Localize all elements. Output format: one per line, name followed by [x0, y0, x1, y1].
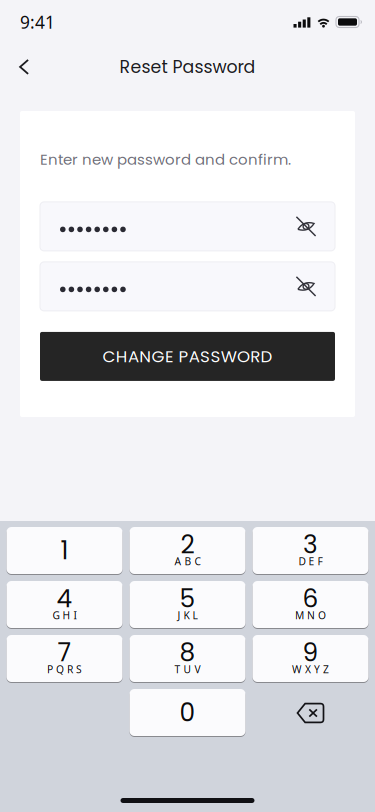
button[interactable]: Show confirm password — [289, 264, 323, 308]
button[interactable]: 6 — [252, 581, 368, 629]
button[interactable]: 1 — [6, 527, 122, 575]
button[interactable]: 8 — [129, 635, 245, 683]
staticText: CHANGE PASSWORD — [102, 345, 273, 368]
button[interactable]: 5 — [129, 581, 245, 629]
button[interactable]: CHANGE PASSWORD — [40, 332, 335, 381]
staticText: G H I — [52, 608, 76, 622]
button[interactable]: 9 — [252, 635, 368, 683]
button[interactable]: Back — [2, 45, 46, 89]
button[interactable]: 2 — [129, 527, 245, 575]
staticText: 5 — [179, 581, 195, 616]
staticText: 4 — [56, 581, 72, 616]
staticText: 9 — [302, 635, 318, 670]
staticText: 8 — [179, 635, 195, 670]
staticText: Reset Password — [119, 55, 255, 79]
staticText: 0 — [179, 695, 195, 730]
button[interactable]: Show password — [289, 204, 323, 248]
staticText: J K L — [177, 608, 197, 622]
staticText: 2 — [180, 527, 194, 562]
staticText: 1 — [60, 533, 68, 568]
staticText: 7 — [57, 635, 71, 670]
staticText: 6 — [302, 581, 318, 616]
button[interactable]: 7 — [6, 635, 122, 683]
staticText: M N O — [295, 608, 326, 622]
button[interactable]: 4 — [6, 581, 122, 629]
staticText: W X Y Z — [292, 662, 329, 676]
staticText: A B C — [174, 554, 200, 568]
button[interactable]: 0 — [129, 689, 245, 737]
staticText: 9:41 — [20, 10, 55, 34]
button[interactable]: Delete — [252, 689, 368, 737]
staticText: Enter new password and confirm. — [40, 149, 291, 170]
staticText: D E F — [298, 554, 322, 568]
staticText: T U V — [174, 662, 200, 676]
staticText: 3 — [303, 527, 318, 562]
button[interactable]: 3 — [252, 527, 368, 575]
staticText: P Q R S — [47, 662, 82, 676]
